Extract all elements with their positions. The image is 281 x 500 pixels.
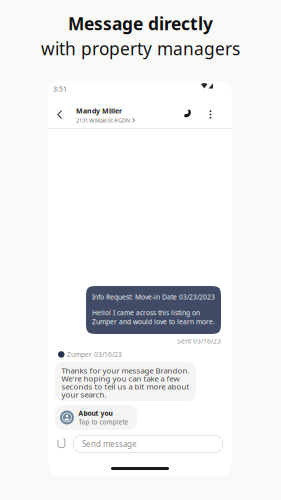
staticText: with property managers <box>41 37 240 60</box>
button[interactable]: Back <box>57 110 65 120</box>
staticText: Zumper 03/16/23 <box>67 350 122 359</box>
staticText: 2131 W Main St #GDN <box>76 116 130 124</box>
staticText: About you <box>78 409 112 417</box>
staticText: Message directly <box>68 12 213 35</box>
staticText: Thanks for your message Brandon. We're h… <box>61 366 189 398</box>
button[interactable]: About you <box>55 405 137 430</box>
staticText: Info Request: Move-in Date 03/23/2023 <box>92 292 215 301</box>
button[interactable]: More options <box>209 109 212 120</box>
button[interactable]: Send message <box>73 435 223 452</box>
button[interactable]: Mandy Miller <box>76 105 172 125</box>
staticText: Tap to complete <box>78 418 128 426</box>
staticText: 3:51 <box>53 84 67 93</box>
staticText: Hello! I came across this listing on Zum… <box>92 308 215 326</box>
staticText: Mandy Miller <box>76 106 122 115</box>
staticText: Sent 03/16/23 <box>177 336 221 345</box>
button[interactable]: Attach <box>57 437 68 450</box>
button[interactable]: Call <box>184 109 191 118</box>
staticText: Send message <box>82 439 137 449</box>
